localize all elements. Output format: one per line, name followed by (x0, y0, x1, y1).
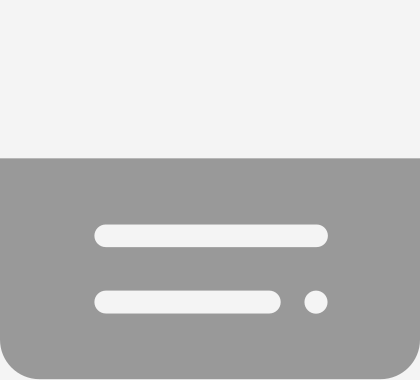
button[interactable]: More options (304, 291, 327, 314)
button[interactable]: First row (94, 224, 328, 247)
button[interactable]: Second row (94, 291, 281, 313)
